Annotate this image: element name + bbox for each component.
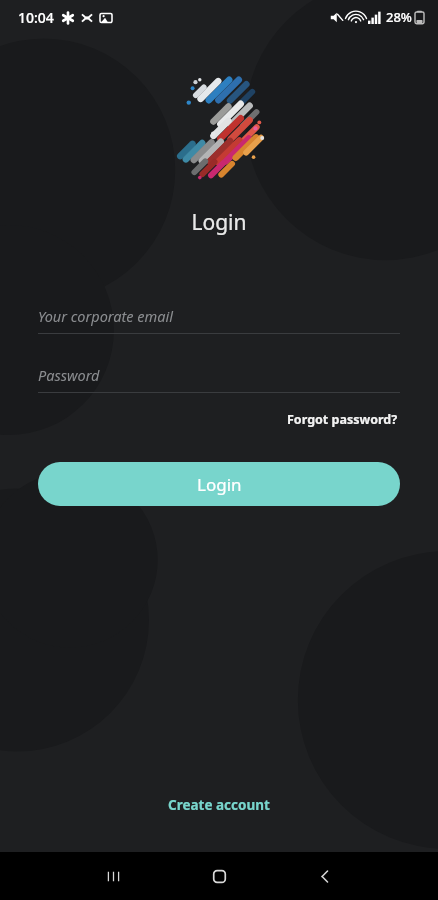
button[interactable]: Recent apps [60, 852, 166, 900]
button[interactable]: Forgot password? [285, 407, 400, 432]
staticText: 28% [386, 8, 412, 26]
button[interactable]: Create account [160, 790, 278, 820]
staticText: Your corporate email [38, 306, 173, 326]
button[interactable]: Your corporate email [38, 299, 400, 334]
button[interactable]: Password [38, 358, 400, 393]
staticText: 10:04 [18, 8, 54, 27]
button[interactable]: Home [166, 852, 272, 900]
button[interactable]: Login [38, 462, 400, 506]
staticText: Login [0, 208, 438, 237]
staticText: Create account [168, 796, 270, 814]
staticText: Forgot password? [287, 411, 398, 428]
staticText: Login [197, 473, 242, 496]
other: App logo [171, 66, 267, 186]
staticText: Password [38, 365, 100, 385]
button[interactable]: Back [272, 852, 378, 900]
